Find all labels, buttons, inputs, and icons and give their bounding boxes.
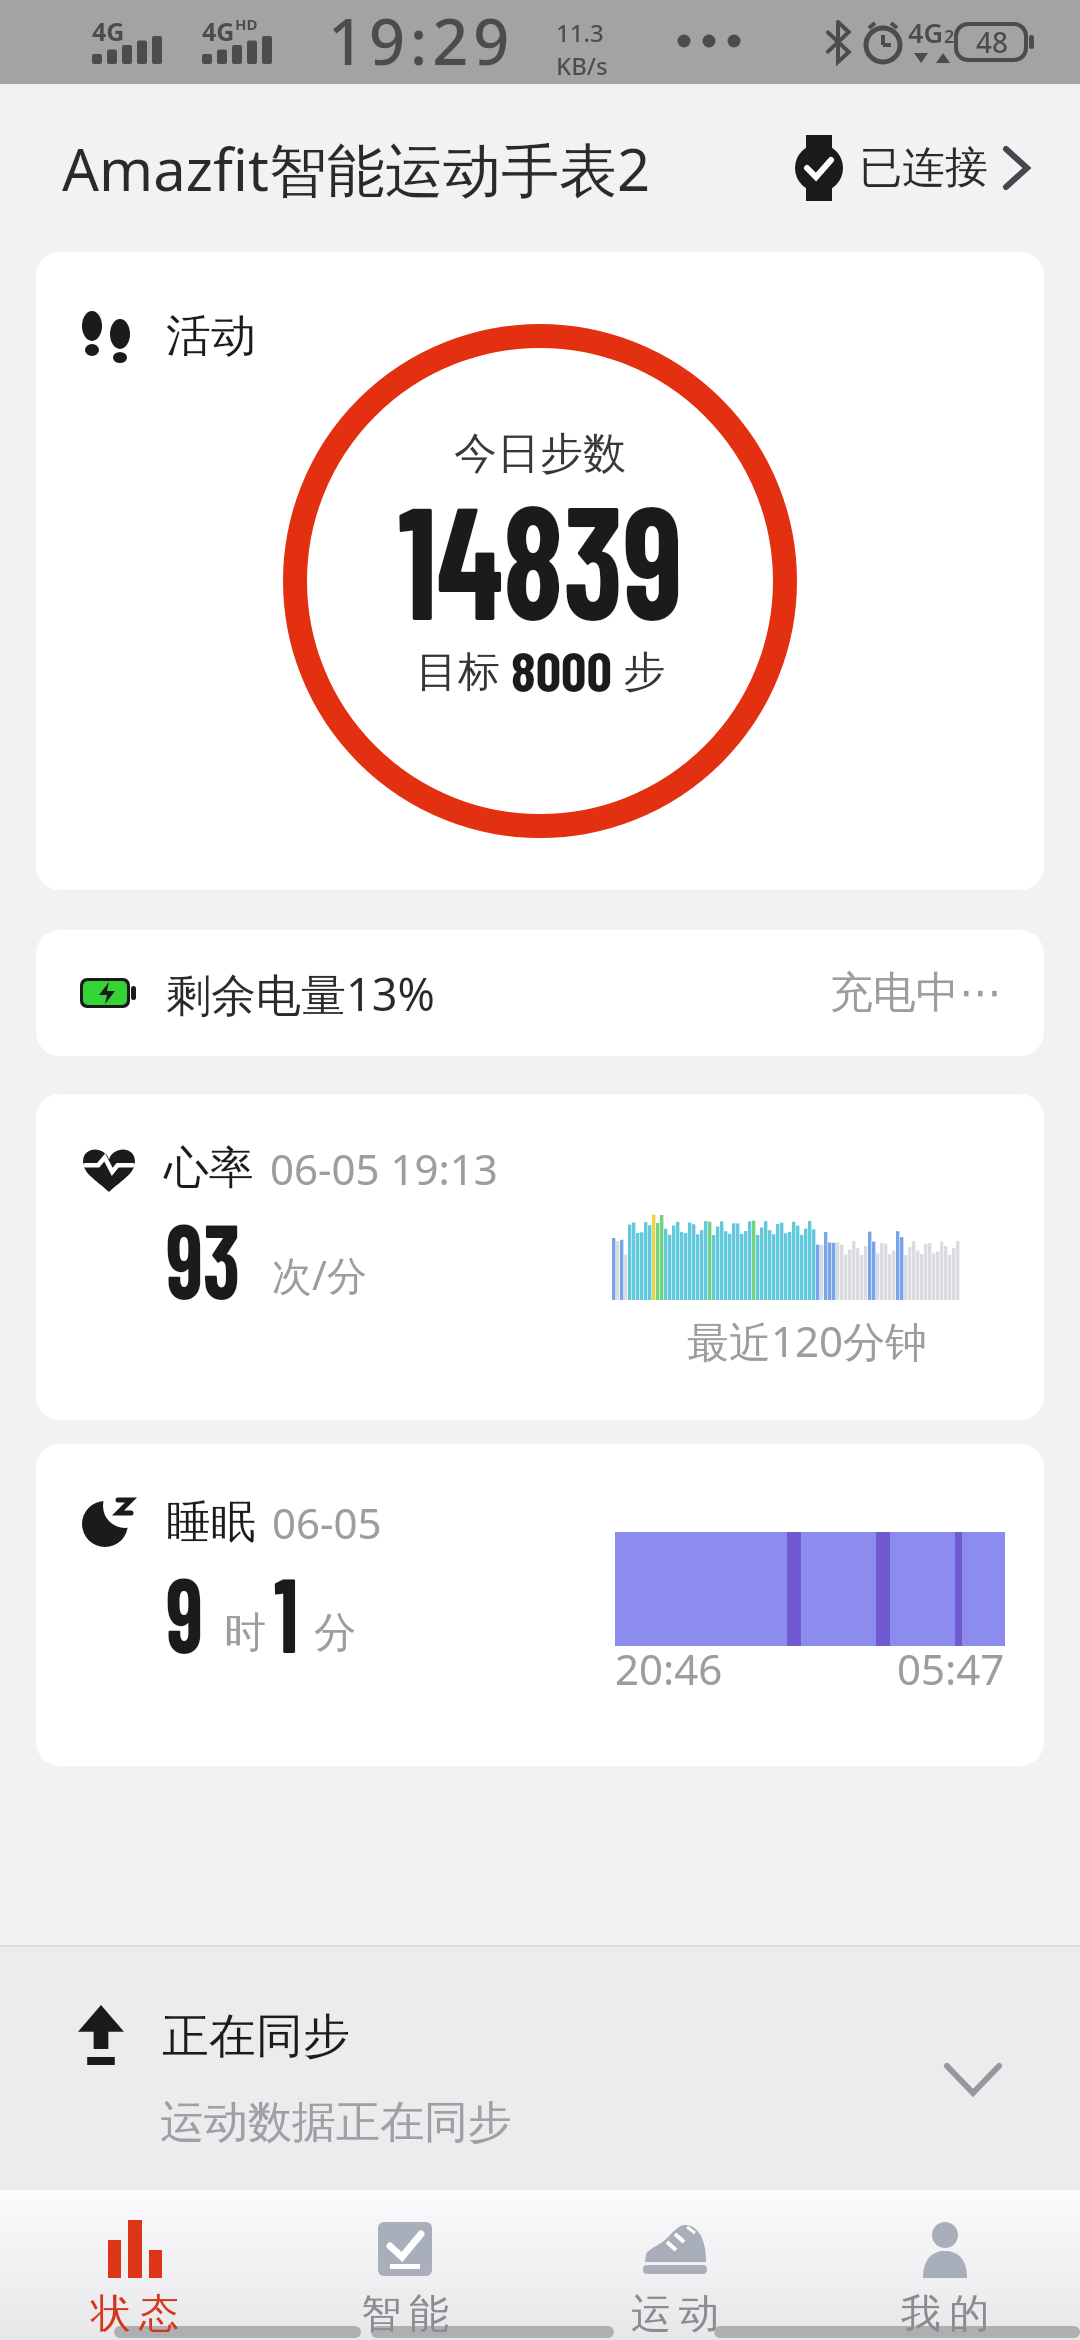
- button[interactable]: 正在同步: [0, 1945, 1080, 2190]
- staticText: 已连接: [859, 141, 988, 195]
- button[interactable]: 运动: [540, 2190, 810, 2340]
- staticText: 智能: [357, 2288, 453, 2338]
- staticText: 分: [314, 1607, 356, 1660]
- staticText: 4G: [92, 14, 125, 48]
- button[interactable]: 智能: [270, 2190, 540, 2340]
- staticText: 运动数据正在同步: [160, 2095, 512, 2150]
- staticText: HD: [235, 14, 258, 34]
- staticText: 19:29: [328, 0, 515, 82]
- staticText: 心率: [164, 1140, 254, 1197]
- button[interactable]: 活动: [36, 252, 1044, 890]
- staticText: 今日步数: [454, 427, 626, 481]
- staticText: Amazfit智能运动手表2: [62, 129, 651, 208]
- button[interactable]: 剩余电量13%: [36, 930, 1044, 1056]
- staticText: 20:46: [615, 1640, 723, 1697]
- staticText: 次/分: [272, 1247, 367, 1302]
- staticText: 步: [612, 641, 665, 698]
- staticText: 05:47: [897, 1640, 1005, 1697]
- staticText: 14839: [398, 462, 683, 652]
- button[interactable]: 心率: [36, 1094, 1044, 1420]
- staticText: 正在同步: [162, 2007, 350, 2066]
- staticText: 4G: [202, 14, 235, 48]
- staticText: 8000: [511, 636, 612, 703]
- staticText: 充电中⋯: [830, 966, 1002, 1020]
- button[interactable]: 睡眠: [36, 1444, 1044, 1766]
- staticText: 11.3: [556, 16, 604, 49]
- staticText: 目标: [416, 641, 511, 698]
- staticText: 06-05: [272, 1494, 382, 1551]
- staticText: 活动: [166, 308, 256, 365]
- staticText: 48: [976, 23, 1009, 61]
- staticText: 93: [166, 1194, 240, 1320]
- button[interactable]: 已连接: [795, 135, 1030, 201]
- staticText: KB/s: [556, 49, 608, 82]
- staticText: 运动: [627, 2288, 723, 2338]
- button[interactable]: 我的: [810, 2190, 1080, 2340]
- staticText: 最近120分钟: [687, 1312, 928, 1369]
- staticText: 时: [224, 1607, 266, 1660]
- staticText: 9: [166, 1548, 203, 1674]
- button[interactable]: 状态: [0, 2190, 270, 2340]
- staticText: 状态: [87, 2288, 183, 2338]
- staticText: 1: [274, 1548, 298, 1674]
- staticText: 我的: [897, 2288, 993, 2338]
- staticText: 4G: [908, 14, 944, 51]
- staticText: 剩余电量13%: [166, 963, 435, 1024]
- staticText: 2: [944, 24, 955, 49]
- staticText: 06-05 19:13: [270, 1140, 498, 1197]
- staticText: 睡眠: [166, 1494, 256, 1551]
